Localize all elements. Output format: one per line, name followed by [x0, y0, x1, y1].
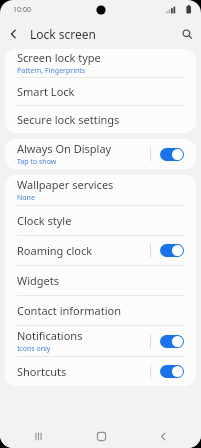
staticText: Tap to show: [17, 157, 57, 167]
button[interactable]: Secure lock settings: [5, 106, 196, 133]
button[interactable]: Clock style: [5, 206, 196, 235]
staticText: Shortcuts: [17, 364, 67, 379]
staticText: Lock screen: [30, 26, 173, 42]
staticText: Icons only: [17, 344, 51, 354]
staticText: 10:00: [13, 5, 31, 15]
staticText: Notifications: [17, 328, 83, 343]
staticText: Contact information: [17, 303, 121, 318]
button[interactable]: Roaming clock: [5, 236, 196, 265]
button[interactable]: Back: [0, 20, 28, 48]
staticText: Pattern, Fingerprints: [17, 66, 86, 76]
button[interactable]: Smart Lock: [5, 78, 196, 105]
button[interactable]: Toggle Notifications: [158, 333, 186, 350]
staticText: Always On Display: [17, 141, 112, 156]
button[interactable]: Home: [76, 424, 126, 448]
staticText: Clock style: [17, 213, 72, 228]
button[interactable]: Always On Display: [5, 139, 196, 169]
staticText: Secure lock settings: [17, 112, 120, 127]
staticText: Screen lock type: [17, 50, 101, 65]
button[interactable]: Toggle Always On Display: [158, 146, 186, 163]
staticText: Smart Lock: [17, 84, 75, 99]
button[interactable]: Recents: [13, 424, 63, 448]
button[interactable]: Search: [173, 20, 201, 48]
staticText: Widgets: [17, 273, 60, 288]
button[interactable]: Widgets: [5, 266, 196, 295]
button[interactable]: Screen lock type: [5, 49, 196, 77]
button[interactable]: Shortcuts: [5, 357, 196, 386]
button[interactable]: Toggle Roaming clock: [158, 242, 186, 259]
staticText: Roaming clock: [17, 243, 93, 258]
button[interactable]: Wallpaper services: [5, 175, 196, 205]
button[interactable]: Toggle Shortcuts: [158, 363, 186, 380]
staticText: None: [17, 193, 35, 203]
button[interactable]: Back: [138, 424, 188, 448]
button[interactable]: Notifications: [5, 326, 196, 356]
button[interactable]: Contact information: [5, 296, 196, 325]
staticText: Wallpaper services: [17, 177, 114, 192]
